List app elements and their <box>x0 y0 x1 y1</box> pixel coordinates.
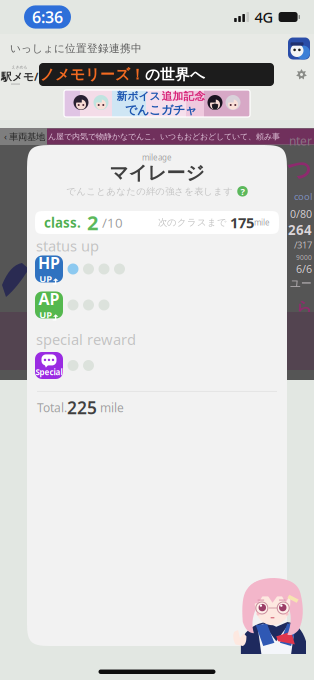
staticText: ん屋で内気で物静かなでんこ。いつもおどおどしていて、頼み事 <box>48 132 280 141</box>
staticText: 6:36 <box>32 6 63 28</box>
staticText: 新ボイス <box>116 90 160 103</box>
staticText: 225 <box>67 396 97 419</box>
staticText: ユー <box>290 277 312 290</box>
staticText: status up <box>36 236 99 255</box>
button[interactable]: Help <box>237 186 248 196</box>
staticText: マイレージ <box>109 162 204 184</box>
staticText: でんこガチャ <box>125 103 197 117</box>
staticText: Total. <box>37 399 67 415</box>
staticText: 0/80 <box>290 207 312 221</box>
staticText: 次のクラスまで <box>158 217 227 228</box>
staticText: 175 <box>230 213 254 232</box>
staticText: special reward <box>36 329 136 349</box>
staticText: /317 <box>294 239 312 251</box>
staticText: ノメモリーズ！ <box>40 65 145 83</box>
staticText: /10 <box>102 214 123 231</box>
staticText: 264 <box>288 221 312 239</box>
staticText: UP <box>39 272 52 285</box>
staticText: AP <box>38 288 59 309</box>
staticText: 2 <box>87 209 98 236</box>
staticText: 4G <box>255 7 274 27</box>
staticText: つ <box>287 155 312 184</box>
button[interactable]: App <box>288 37 310 59</box>
staticText: Special <box>35 367 62 377</box>
staticText: 6/6 <box>296 262 312 276</box>
staticText: mileage <box>142 152 172 163</box>
staticText: HP <box>38 252 60 273</box>
staticText: ? <box>240 185 244 197</box>
staticText: いっしょに位置登録連携中 <box>10 42 142 55</box>
staticText: えきめも <box>11 65 27 69</box>
staticText: ら <box>296 298 312 318</box>
staticText: class. <box>44 214 81 231</box>
staticText: の世界へ <box>145 65 205 83</box>
staticText: でんことあなたの絆の強さを表します <box>66 186 233 197</box>
staticText: nter <box>289 133 312 149</box>
staticText: 駅メモ/ <box>1 69 38 84</box>
staticText: cool <box>294 190 312 203</box>
staticText: 9000 <box>296 253 312 262</box>
staticText: ‹ 車両基地 <box>4 130 45 143</box>
button[interactable]: Settings <box>296 69 314 80</box>
button[interactable]: Promotion <box>64 86 250 120</box>
staticText: 追加記念 <box>161 90 205 103</box>
staticText: mile <box>254 217 270 228</box>
staticText: mile <box>97 399 124 415</box>
staticText: UP <box>39 308 52 321</box>
